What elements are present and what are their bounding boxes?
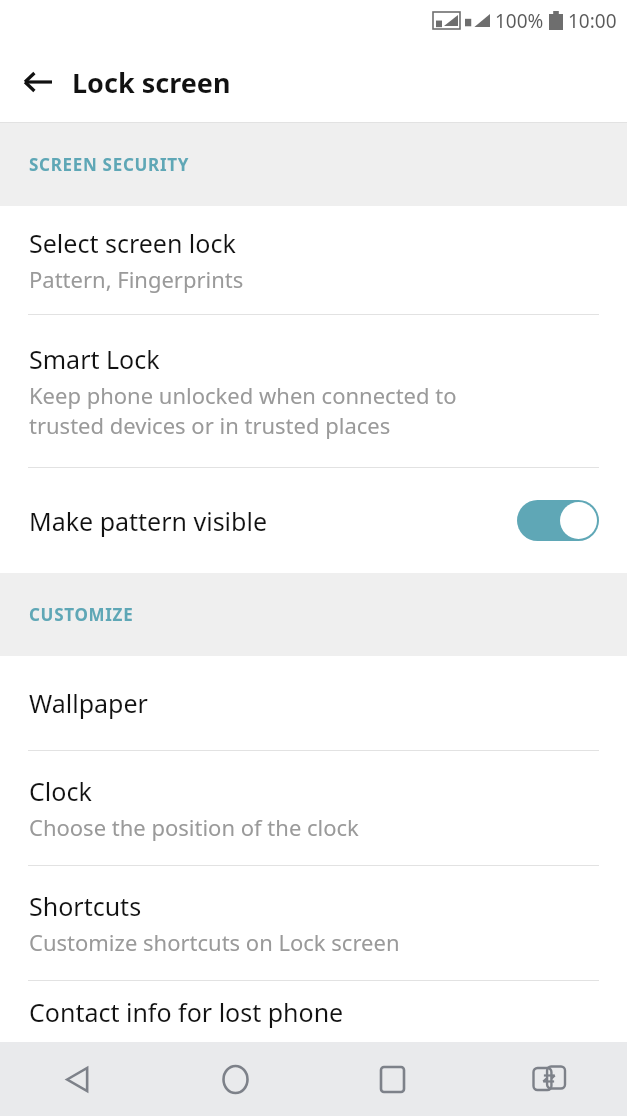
- staticText: Lock screen: [72, 64, 231, 101]
- button[interactable]: Smart Lock: [0, 315, 627, 467]
- staticText: Shortcuts: [29, 889, 142, 923]
- button[interactable]: Make pattern visible: [0, 468, 627, 573]
- staticText: Clock: [29, 774, 92, 808]
- staticText: CUSTOMIZE: [29, 603, 134, 626]
- button[interactable]: Wallpaper: [0, 656, 627, 750]
- button[interactable]: Home: [207, 1051, 263, 1107]
- staticText: Contact info for lost phone: [29, 995, 344, 1029]
- staticText: Keep phone unlocked when connected to tr…: [29, 380, 457, 440]
- staticText: 100%: [495, 8, 544, 34]
- button[interactable]: Back: [14, 58, 62, 106]
- staticText: 10:00: [568, 8, 617, 34]
- button[interactable]: Contact info for lost phone: [0, 981, 627, 1042]
- button[interactable]: Select screen lock: [0, 206, 627, 314]
- staticText: Choose the position of the clock: [29, 812, 359, 842]
- staticText: Select screen lock: [29, 226, 236, 260]
- staticText: SCREEN SECURITY: [29, 153, 190, 176]
- button[interactable]: Back: [50, 1051, 106, 1107]
- staticText: Wallpaper: [29, 686, 148, 720]
- staticText: Pattern, Fingerprints: [29, 264, 244, 294]
- button[interactable]: Clock: [0, 751, 627, 865]
- staticText: Smart Lock: [29, 342, 160, 376]
- button[interactable]: Shortcuts: [0, 866, 627, 980]
- button[interactable]: Recents: [364, 1051, 420, 1107]
- staticText: Customize shortcuts on Lock screen: [29, 927, 400, 957]
- staticText: Make pattern visible: [29, 504, 517, 538]
- button[interactable]: Dual window: [521, 1051, 577, 1107]
